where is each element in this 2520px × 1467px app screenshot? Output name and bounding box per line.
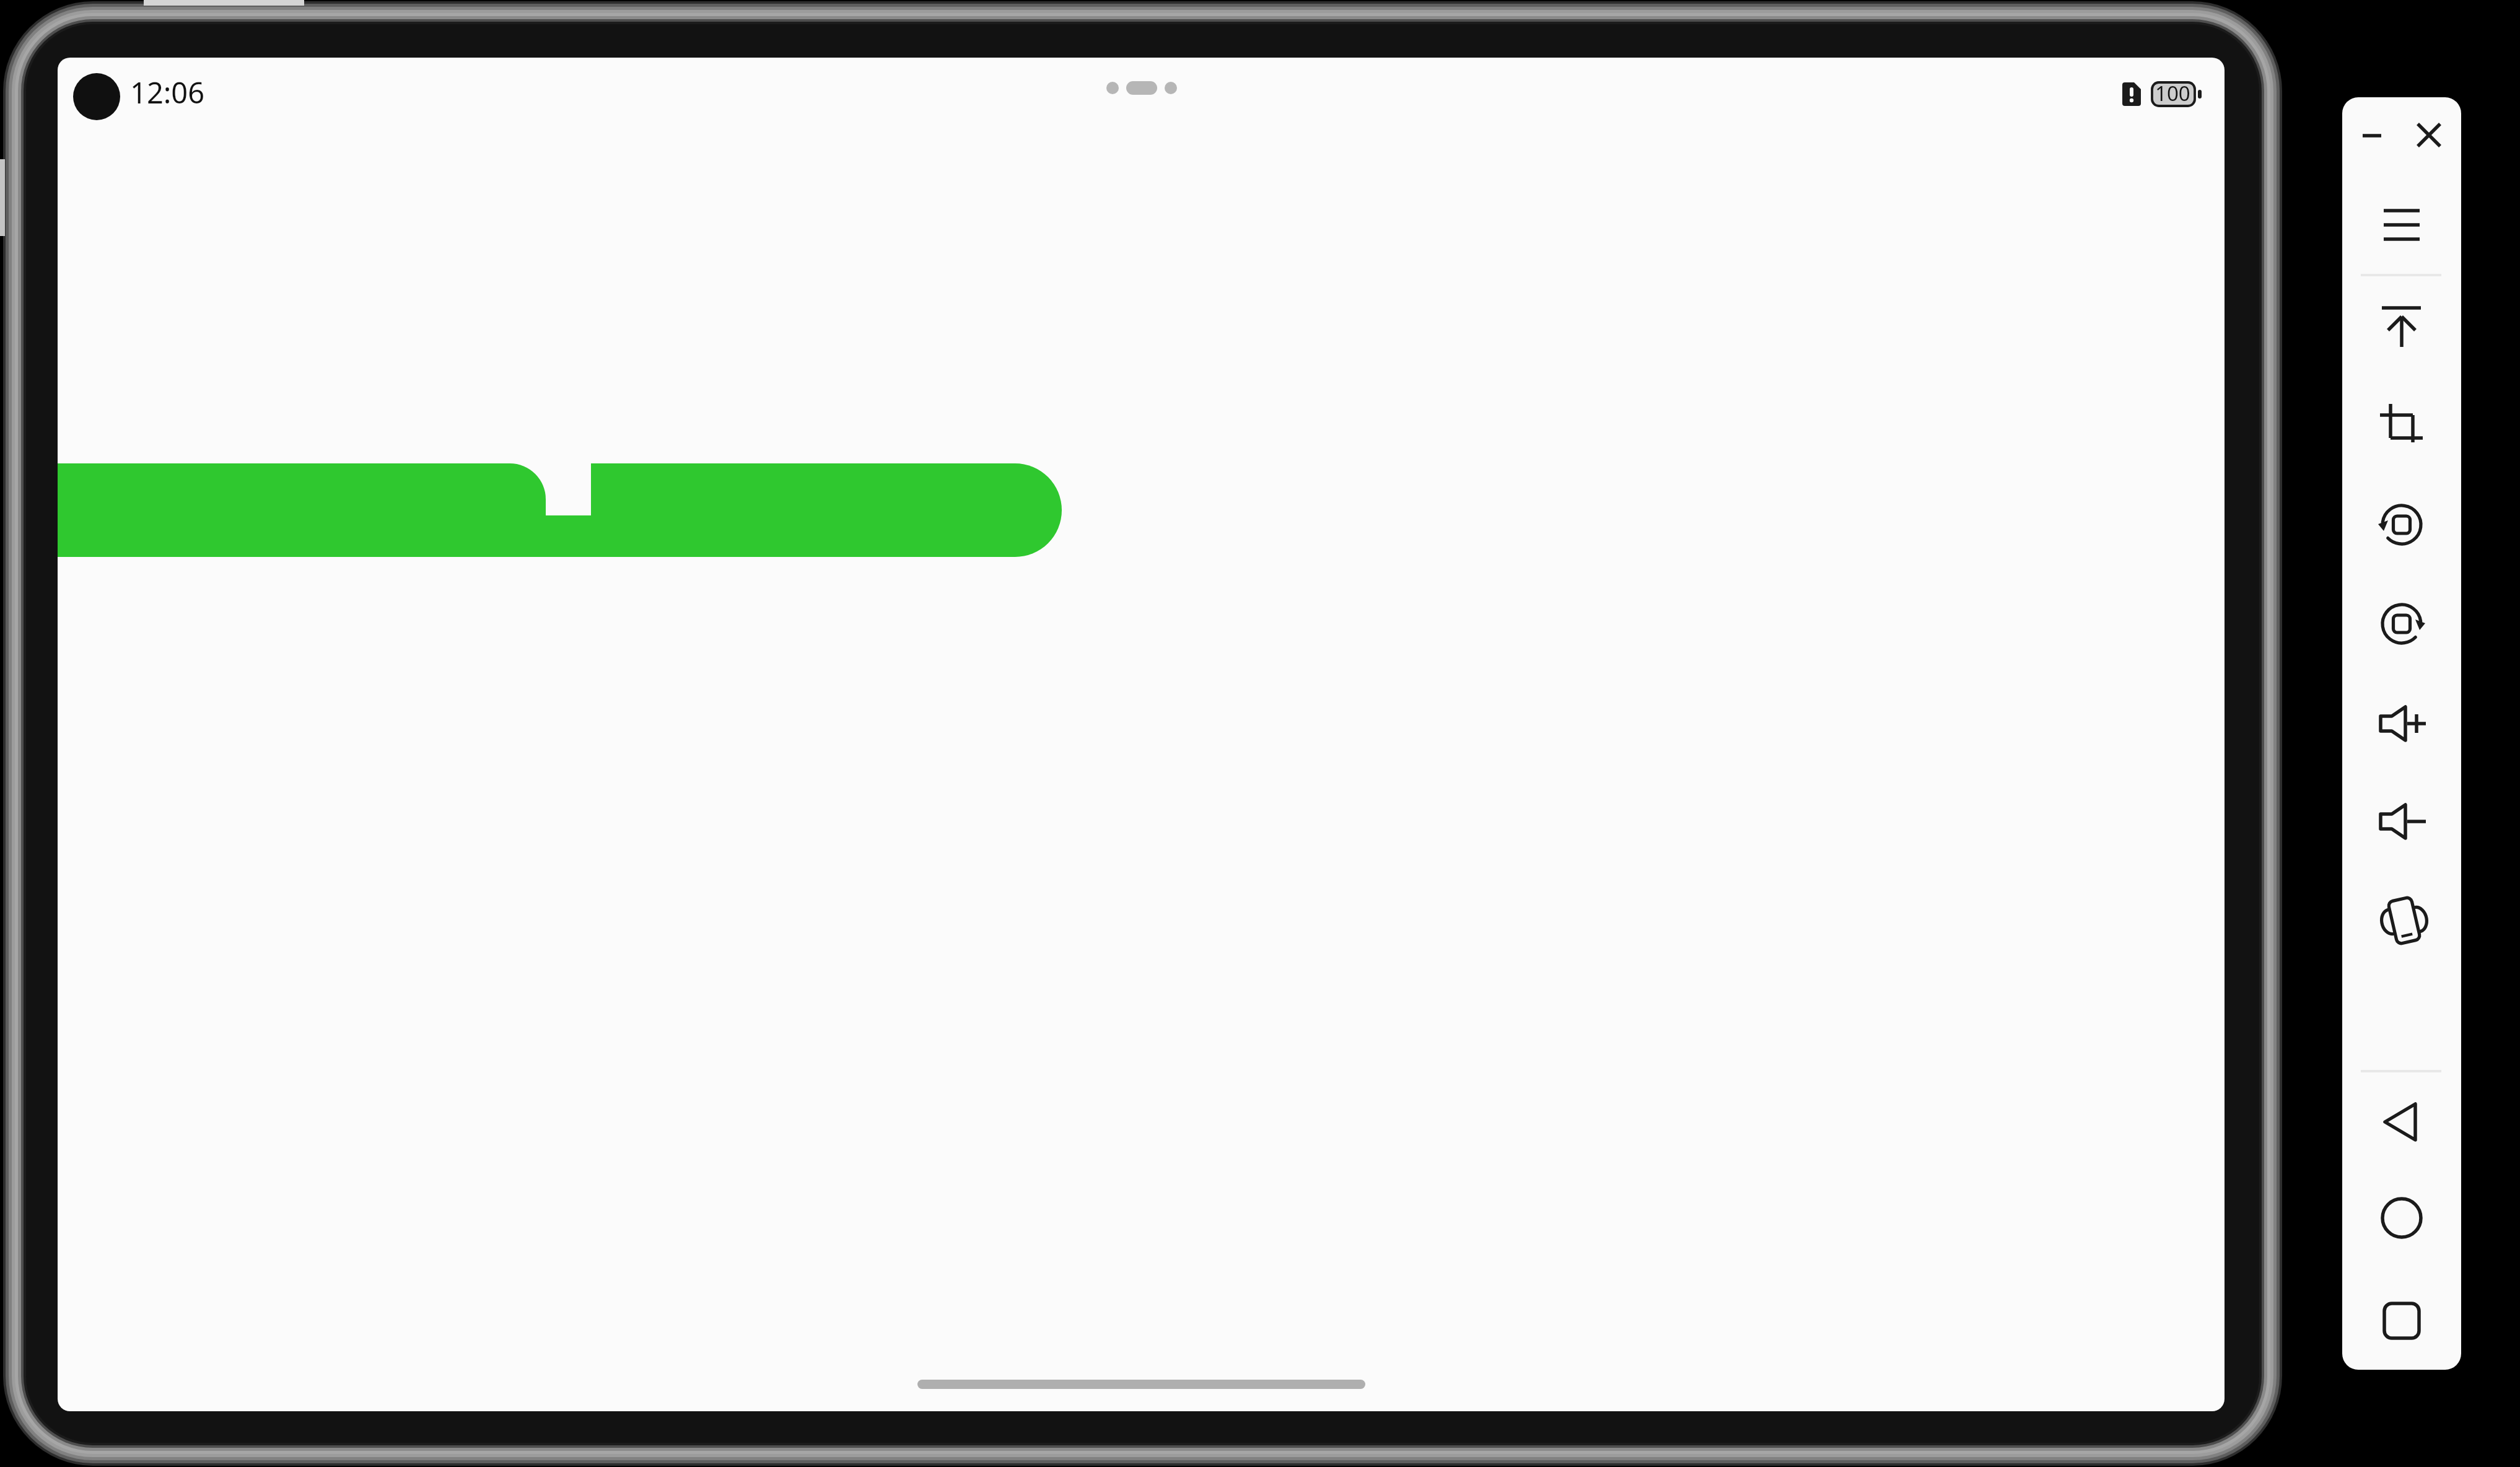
button[interactable]: Back xyxy=(2384,1103,2421,1141)
button[interactable]: Rotate device xyxy=(2376,892,2428,944)
button[interactable]: Volume down xyxy=(2378,799,2426,844)
button[interactable]: Volume up xyxy=(2378,701,2426,745)
staticText: 12:06 xyxy=(130,72,205,112)
button[interactable]: Rotate right xyxy=(2379,602,2424,647)
button[interactable]: Home xyxy=(2381,1197,2423,1239)
button[interactable]: Recent apps xyxy=(2382,1302,2421,1340)
button[interactable]: Minimise xyxy=(2354,121,2384,151)
button[interactable]: Move up xyxy=(2382,300,2422,353)
button[interactable]: Crop screenshot xyxy=(2382,396,2422,439)
button[interactable]: Progress xyxy=(58,458,1067,563)
button[interactable]: Menu xyxy=(2382,209,2422,242)
button[interactable]: Close xyxy=(2414,120,2444,150)
button[interactable]: Rotate left xyxy=(2379,503,2424,548)
staticText: 100 xyxy=(2155,79,2190,107)
